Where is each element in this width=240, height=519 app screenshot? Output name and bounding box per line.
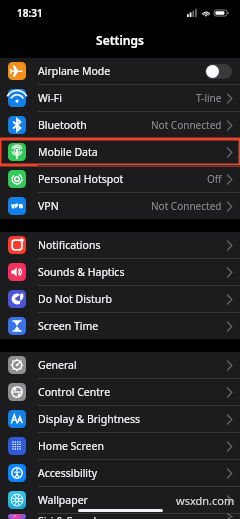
staticText: Not Connected — [151, 199, 222, 213]
button[interactable]: Screen Time — [0, 313, 240, 339]
staticText: Off — [207, 172, 222, 186]
staticText: Sounds & Haptics — [38, 265, 125, 279]
staticText: Do Not Disturb — [38, 292, 113, 306]
button[interactable]: Mobile Data — [0, 139, 240, 165]
button[interactable]: Sounds & Haptics — [0, 259, 240, 285]
button[interactable]: Personal Hotspot — [0, 166, 240, 192]
staticText: Settings — [96, 32, 144, 48]
button[interactable]: General — [0, 352, 240, 378]
staticText: Wallpaper — [38, 493, 88, 507]
staticText: Mobile Data — [38, 145, 98, 159]
staticText: Airplane Mode — [38, 64, 111, 78]
staticText: Wi-Fi — [38, 91, 63, 105]
button[interactable]: Airplane Mode — [0, 58, 240, 84]
button[interactable]: Notifications — [0, 232, 240, 258]
staticText: Bluetooth — [38, 118, 87, 132]
staticText: Personal Hotspot — [38, 172, 124, 186]
staticText: Accessibility — [38, 466, 98, 480]
other: Airplane Mode toggle — [205, 64, 232, 79]
button[interactable]: Wallpaper — [0, 487, 240, 513]
staticText: 18:31 — [17, 6, 43, 20]
staticText: Control Centre — [38, 385, 111, 399]
staticText: Not Connected — [151, 118, 222, 132]
button[interactable]: Accessibility — [0, 460, 240, 486]
button[interactable]: Siri & Search — [0, 514, 240, 519]
button[interactable]: Display & Brightness — [0, 406, 240, 432]
staticText: Screen Time — [38, 319, 99, 333]
staticText: Siri & Search — [38, 514, 100, 519]
button[interactable]: Wi-Fi — [0, 85, 240, 111]
button[interactable]: VPN — [0, 193, 240, 219]
staticText: Display & Brightness — [38, 412, 141, 426]
staticText: wsxdn.com — [176, 493, 235, 508]
button[interactable]: Control Centre — [0, 379, 240, 405]
button[interactable]: Do Not Disturb — [0, 286, 240, 312]
staticText: Notifications — [38, 238, 101, 252]
staticText: Home Screen — [38, 439, 104, 453]
button[interactable]: Bluetooth — [0, 112, 240, 138]
button[interactable]: Home Screen — [0, 433, 240, 459]
staticText: General — [38, 358, 77, 372]
staticText: VPN — [38, 199, 59, 213]
staticText: T-line — [196, 91, 222, 105]
